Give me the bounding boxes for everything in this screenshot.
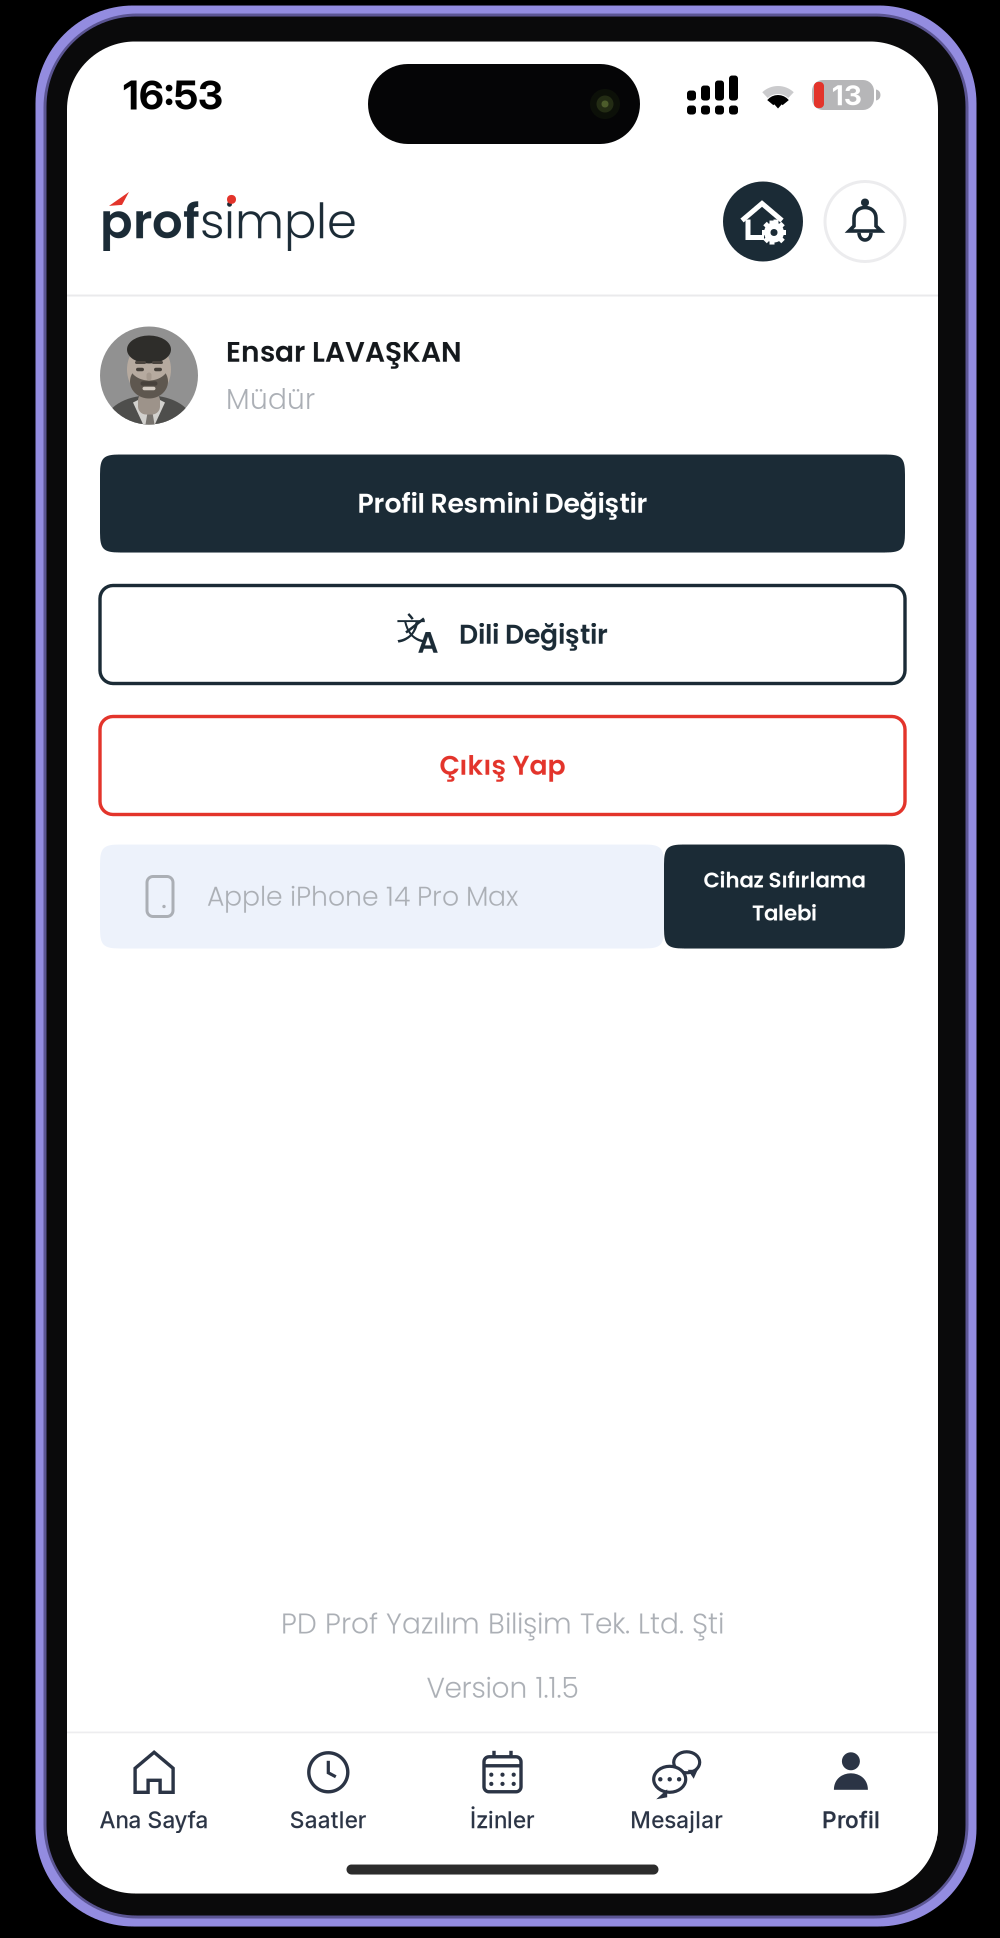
staticText: Çıkış Yap xyxy=(439,747,565,784)
staticText: İzinler xyxy=(470,1806,535,1834)
staticText: Müdür xyxy=(226,379,315,419)
staticText: Talebi xyxy=(752,898,817,928)
staticText: 13 xyxy=(832,78,862,112)
staticText: Cihaz Sıfırlama xyxy=(703,865,865,895)
button[interactable]: Çıkış Yap xyxy=(100,716,905,814)
staticText: Mesajlar xyxy=(630,1806,723,1834)
button[interactable]: Cihaz Sıfırlama xyxy=(664,844,905,948)
button[interactable]: Profil xyxy=(764,1733,938,1841)
staticText: Version 1.1.5 xyxy=(426,1668,578,1707)
staticText: Profil Resmini Değiştir xyxy=(357,485,647,522)
staticText: 文 xyxy=(396,609,427,648)
staticText: Apple iPhone 14 Pro Max xyxy=(207,878,518,915)
staticText: A xyxy=(417,622,438,663)
staticText: Saatler xyxy=(290,1806,367,1834)
staticText: simple xyxy=(200,188,357,255)
button[interactable]: Saatler xyxy=(241,1733,415,1841)
staticText: 16:53 xyxy=(123,71,223,119)
staticText: Profil xyxy=(822,1806,880,1834)
staticText: prof xyxy=(100,188,200,255)
button[interactable]: 文 xyxy=(100,585,905,683)
button[interactable]: İzinler xyxy=(415,1733,590,1841)
staticText: Ana Sayfa xyxy=(100,1806,209,1834)
staticText: PD Prof Yazılım Bilişim Tek. Ltd. Şti xyxy=(281,1604,724,1643)
button[interactable]: Profil Resmini Değiştir xyxy=(100,454,905,552)
staticText: Dili Değiştir xyxy=(459,616,608,653)
button[interactable]: Bildirimler xyxy=(825,181,905,261)
button[interactable]: Mesajlar xyxy=(590,1733,764,1841)
staticText: Ensar LAVAŞKAN xyxy=(226,332,462,371)
button[interactable]: Ana Sayfa xyxy=(67,1733,241,1841)
button[interactable]: Şube ayarları xyxy=(723,181,803,261)
